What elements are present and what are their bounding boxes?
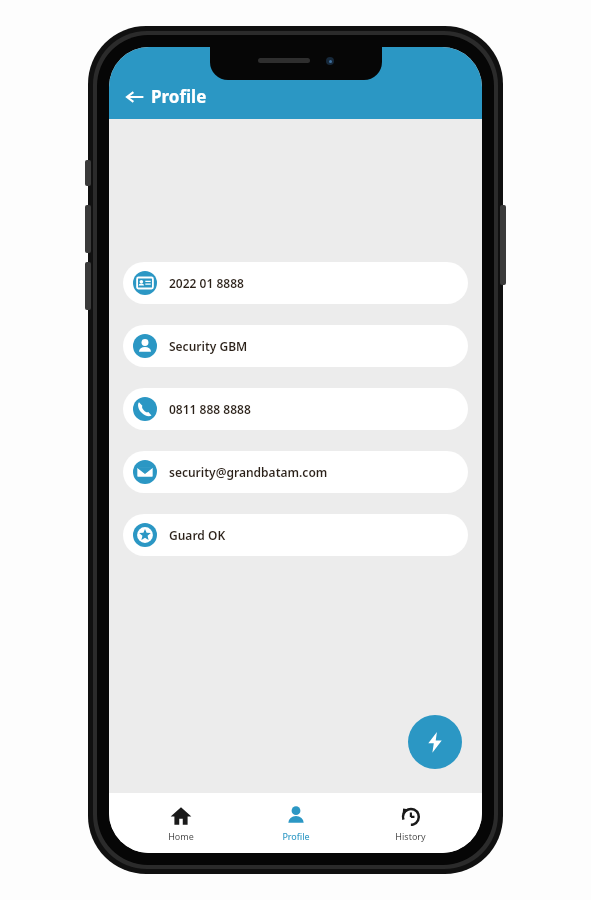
staticText: Security GBM: [169, 338, 248, 354]
staticText: security@grandbatam.com: [169, 464, 328, 480]
staticText: Profile: [151, 85, 207, 108]
button[interactable]: 2022 01 8888: [123, 262, 468, 304]
button[interactable]: Security GBM: [123, 325, 468, 367]
staticText: 0811 888 8888: [169, 401, 251, 417]
button[interactable]: 0811 888 8888: [123, 388, 468, 430]
button[interactable]: Guard OK: [123, 514, 468, 556]
button[interactable]: Back: [121, 82, 211, 111]
button[interactable]: Home: [139, 800, 223, 847]
staticText: Home: [168, 830, 194, 842]
staticText: Guard OK: [169, 527, 226, 543]
button[interactable]: Quick action: [408, 715, 462, 769]
staticText: History: [395, 830, 426, 842]
staticText: Profile: [282, 830, 310, 842]
button[interactable]: security@grandbatam.com: [123, 451, 468, 493]
other: Back: [125, 87, 145, 107]
button[interactable]: Profile: [254, 800, 338, 847]
staticText: 2022 01 8888: [169, 275, 244, 291]
button[interactable]: History: [368, 800, 452, 847]
